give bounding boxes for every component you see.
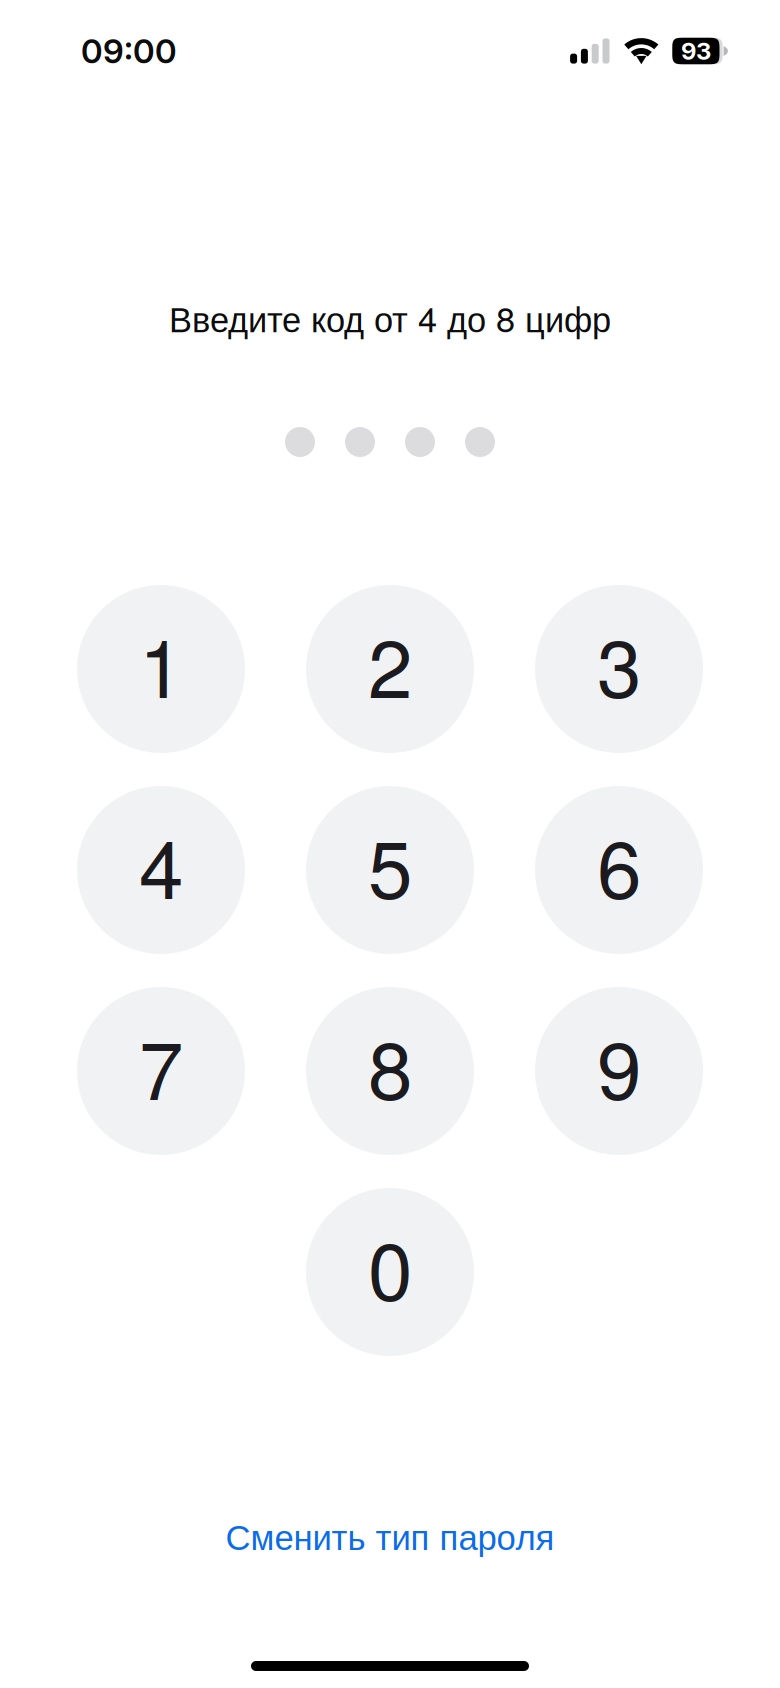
button[interactable]: 3 xyxy=(535,585,703,753)
staticText: 1 xyxy=(139,606,183,721)
button[interactable]: 2 xyxy=(306,585,474,753)
staticText: Введите код от 4 до 8 цифр xyxy=(169,293,611,342)
button[interactable]: 4 xyxy=(77,786,245,954)
staticText: Сменить тип пароля xyxy=(225,1519,554,1557)
staticText: 6 xyxy=(597,807,641,922)
staticText: 93 xyxy=(681,36,711,65)
staticText: 09:00 xyxy=(81,31,177,71)
button[interactable]: 9 xyxy=(535,987,703,1155)
button[interactable]: Сменить тип пароля xyxy=(180,1511,600,1565)
staticText: 5 xyxy=(368,807,412,922)
button[interactable]: 6 xyxy=(535,786,703,954)
staticText: 8 xyxy=(368,1008,412,1123)
button[interactable]: 1 xyxy=(77,585,245,753)
button[interactable]: 5 xyxy=(306,786,474,954)
staticText: 2 xyxy=(368,606,412,721)
staticText: 3 xyxy=(597,606,641,721)
staticText: 4 xyxy=(139,807,183,922)
staticText: 9 xyxy=(597,1008,641,1123)
button[interactable]: 7 xyxy=(77,987,245,1155)
staticText: 0 xyxy=(368,1209,412,1324)
staticText: 7 xyxy=(139,1008,183,1123)
button[interactable]: 8 xyxy=(306,987,474,1155)
button[interactable]: 0 xyxy=(306,1188,474,1356)
